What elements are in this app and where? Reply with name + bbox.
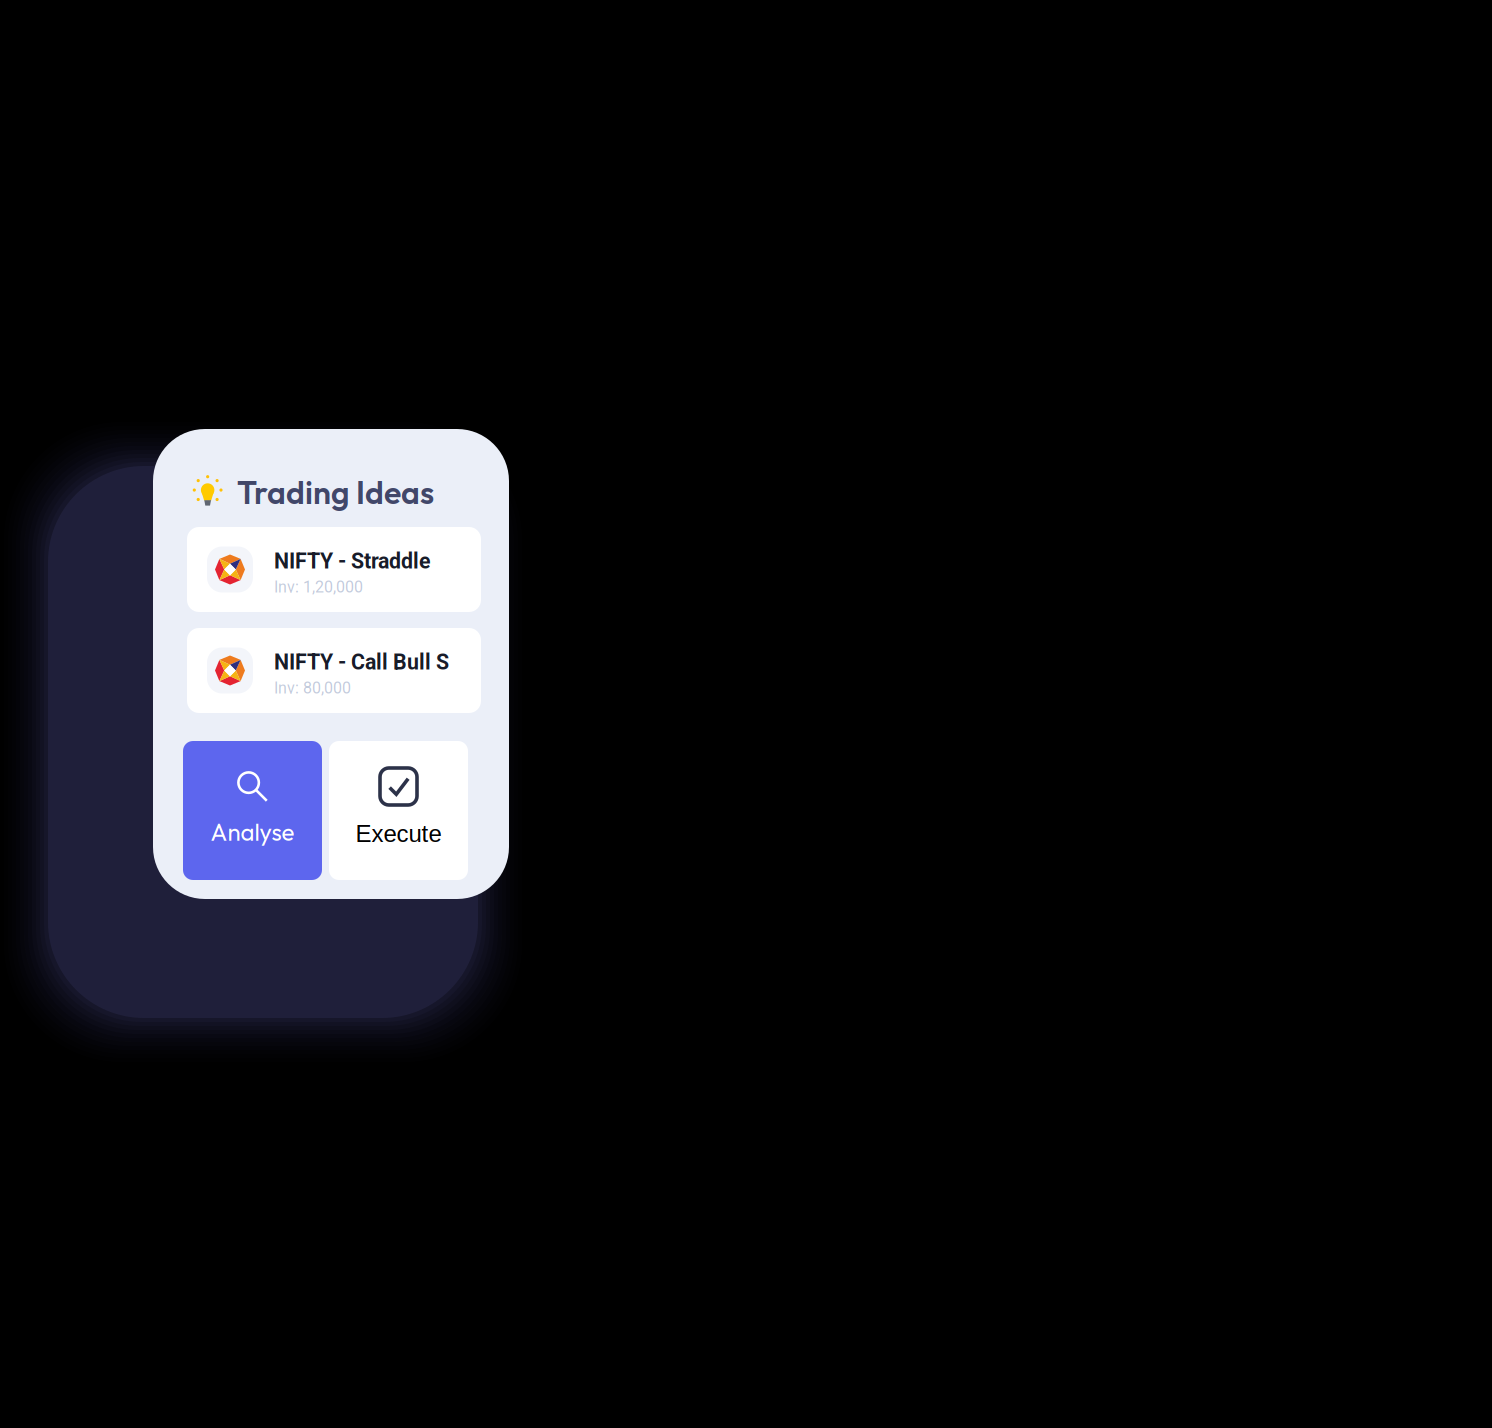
staticText: NIFTY - Call Bull S bbox=[274, 650, 449, 675]
staticText: NIFTY - Straddle bbox=[274, 549, 431, 574]
staticText: Analyse bbox=[210, 817, 294, 847]
staticText: Execute bbox=[355, 820, 441, 847]
button[interactable]: Analyse bbox=[183, 741, 322, 880]
button[interactable]: NIFTY - Call Bull S bbox=[187, 628, 481, 713]
staticText: Inv: 80,000 bbox=[274, 679, 351, 697]
button[interactable]: Execute bbox=[329, 741, 468, 880]
staticText: Inv: 1,20,000 bbox=[274, 578, 363, 596]
button[interactable]: NIFTY - Straddle bbox=[187, 527, 481, 612]
staticText: Trading Ideas bbox=[237, 472, 434, 512]
